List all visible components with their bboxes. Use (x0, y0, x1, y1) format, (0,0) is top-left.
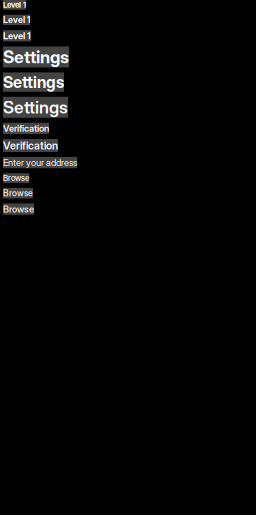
staticText: Browse (3, 188, 33, 198)
staticText: Verification (3, 139, 58, 152)
staticText: Verification (3, 123, 49, 134)
staticText: Settings (3, 72, 64, 92)
staticText: Settings (3, 97, 68, 118)
staticText: Browse (3, 203, 34, 215)
staticText: Level 1 (3, 30, 31, 41)
staticText: Settings (3, 46, 69, 67)
staticText: Level 1 (3, 0, 26, 10)
staticText: Enter your address (3, 157, 77, 168)
staticText: Browse (3, 173, 29, 183)
staticText: Level 1 (3, 15, 30, 25)
